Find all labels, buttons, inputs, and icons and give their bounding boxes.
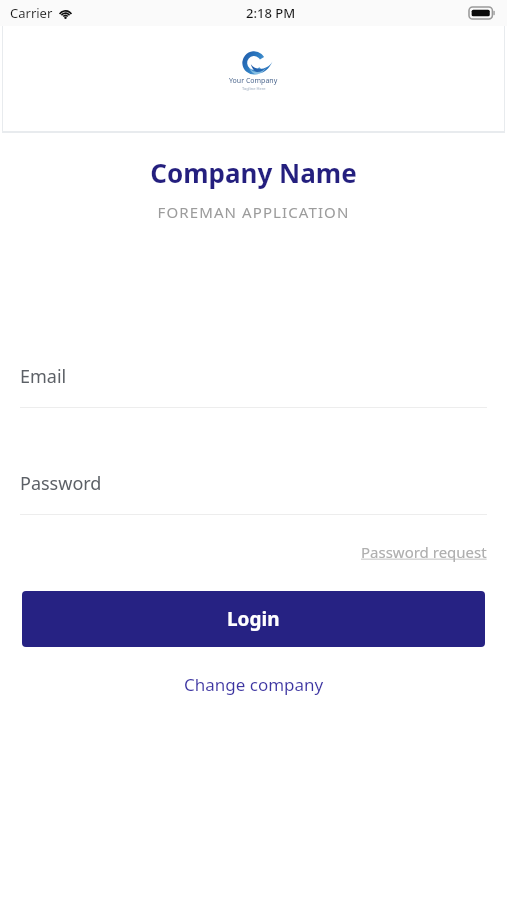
- button[interactable]: Login: [22, 591, 485, 647]
- button[interactable]: Email: [20, 364, 487, 408]
- staticText: Your Company: [229, 76, 278, 86]
- staticText: 2:18 PM: [246, 4, 296, 22]
- button[interactable]: Password request: [361, 540, 487, 564]
- staticText: FOREMAN APPLICATION: [0, 202, 507, 222]
- staticText: Change company: [184, 673, 324, 696]
- staticText: Login: [227, 606, 280, 632]
- staticText: Tagline Here: [242, 86, 266, 91]
- button[interactable]: Password: [20, 471, 487, 515]
- button[interactable]: Change company: [168, 667, 340, 702]
- staticText: Company Name: [0, 155, 507, 190]
- staticText: Email: [20, 364, 67, 389]
- staticText: Carrier: [10, 4, 53, 22]
- staticText: Password: [20, 471, 102, 496]
- staticText: Password request: [361, 542, 487, 562]
